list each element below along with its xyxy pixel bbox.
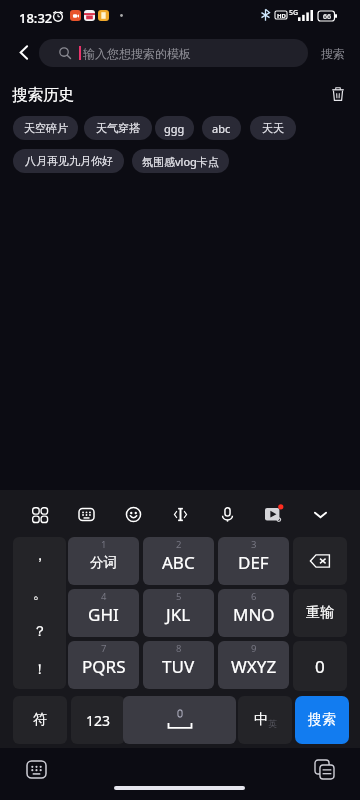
button[interactable]: PQRS	[68, 641, 139, 689]
button[interactable]: 搜索	[295, 696, 349, 744]
button[interactable]: 重输	[293, 589, 347, 637]
button[interactable]: 123	[71, 696, 125, 744]
button[interactable]: Punctuation	[13, 537, 66, 689]
button[interactable]: 0	[293, 641, 347, 691]
staticText: HD	[277, 12, 286, 20]
button[interactable]: Clipboard	[306, 751, 342, 787]
staticText: 符	[33, 711, 47, 729]
staticText: 输入您想搜索的模板	[83, 46, 191, 61]
staticText: 。	[33, 585, 47, 603]
button[interactable]: 输入您想搜索的模板	[39, 39, 308, 67]
button[interactable]: 搜索	[310, 36, 356, 70]
staticText: 搜索	[321, 46, 345, 61]
button[interactable]: Hide keyboard	[302, 496, 338, 532]
staticText: abc	[212, 121, 231, 136]
button[interactable]: Language	[238, 696, 292, 744]
staticText: 天气穿搭	[96, 121, 140, 135]
staticText: TUV	[162, 655, 195, 678]
button[interactable]: Text editing	[162, 496, 198, 532]
button[interactable]: Tools	[21, 496, 57, 532]
staticText: 66	[323, 12, 332, 22]
staticText: WXYZ	[231, 655, 277, 678]
staticText: 2	[176, 538, 182, 551]
button[interactable]: TUV	[143, 641, 214, 689]
staticText: 中	[254, 711, 268, 729]
button[interactable]: ABC	[143, 537, 214, 585]
staticText: 123	[86, 711, 111, 730]
button[interactable]: Backspace	[293, 537, 347, 585]
staticText: ！	[33, 661, 47, 679]
staticText: ，	[33, 547, 47, 565]
button[interactable]: DEF	[218, 537, 289, 585]
staticText: 18:32	[19, 9, 53, 27]
staticText: ABC	[162, 551, 195, 574]
button[interactable]: Keyboard layout	[68, 496, 104, 532]
staticText: 5G	[289, 8, 299, 18]
button[interactable]: Clear history	[323, 79, 352, 108]
button[interactable]: ggg	[155, 116, 194, 140]
staticText: 天天	[262, 121, 284, 135]
button[interactable]: 符	[13, 696, 67, 744]
staticText: MNO	[233, 603, 275, 626]
staticText: 英	[268, 718, 277, 729]
staticText: 1	[101, 538, 107, 551]
button[interactable]: 分词	[68, 537, 139, 585]
button[interactable]: JKL	[143, 589, 214, 637]
staticText: 分词	[90, 554, 117, 571]
staticText: 天空碎片	[24, 121, 68, 135]
button[interactable]: Keyboard settings	[18, 751, 54, 787]
staticText: 8	[176, 642, 182, 655]
button[interactable]: Voice input	[209, 496, 245, 532]
staticText: 搜索	[308, 711, 336, 729]
button[interactable]: Video input	[256, 496, 292, 532]
staticText: 搜索历史	[12, 85, 74, 105]
button[interactable]: Back	[5, 34, 41, 70]
staticText: 重输	[306, 604, 334, 622]
button[interactable]: 天气穿搭	[84, 116, 152, 140]
staticText: 7	[101, 642, 107, 655]
button[interactable]: 氛围感vlog卡点	[132, 149, 229, 173]
button[interactable]: 天天	[250, 116, 296, 140]
staticText: ？	[33, 623, 47, 641]
button[interactable]: MNO	[218, 589, 289, 637]
staticText: 6	[251, 590, 257, 603]
staticText: 3	[251, 538, 257, 551]
staticText: ggg	[164, 121, 185, 136]
staticText: DEF	[238, 551, 269, 574]
staticText: JKL	[166, 603, 191, 626]
staticText: PQRS	[82, 655, 126, 678]
button[interactable]: abc	[202, 116, 241, 140]
staticText: 4	[101, 590, 107, 603]
button[interactable]: Space	[123, 696, 236, 744]
staticText: 八月再见九月你好	[25, 154, 113, 168]
staticText: 9	[251, 642, 257, 655]
button[interactable]: WXYZ	[218, 641, 289, 689]
button[interactable]: 天空碎片	[13, 116, 78, 140]
button[interactable]: Emoji	[115, 496, 151, 532]
staticText: 5	[176, 590, 182, 603]
button[interactable]: 八月再见九月你好	[13, 149, 124, 173]
staticText: 0	[315, 655, 325, 678]
staticText: GHI	[88, 603, 119, 626]
staticText: 氛围感vlog卡点	[142, 154, 219, 169]
button[interactable]: GHI	[68, 589, 139, 637]
